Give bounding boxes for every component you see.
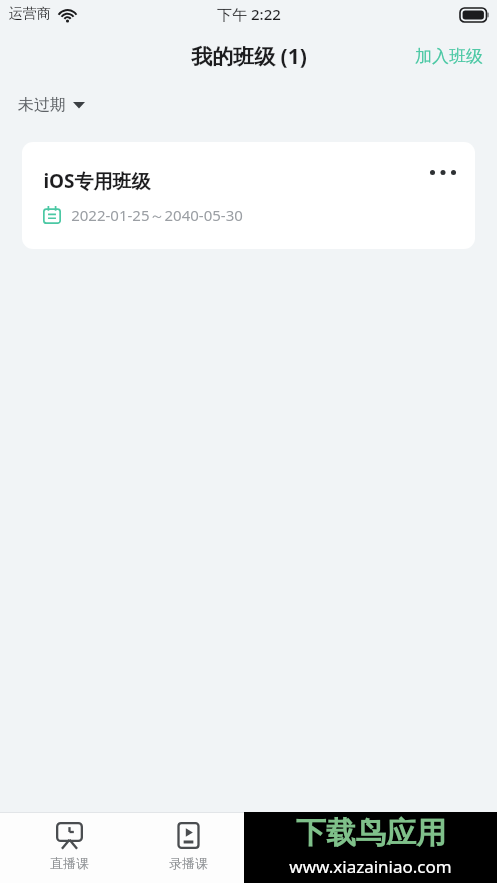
button[interactable]: 直播课	[20, 813, 119, 883]
button[interactable]: 更多	[419, 154, 467, 190]
staticText: 加入班级	[415, 46, 483, 67]
button[interactable]: iOS专用班级	[22, 142, 475, 249]
staticText: 我的班级 (1)	[191, 42, 307, 71]
staticText: iOS专用班级	[43, 168, 151, 194]
staticText: 商城	[296, 855, 322, 871]
staticText: 我的	[415, 855, 441, 871]
staticText: 录播课	[169, 855, 208, 871]
staticText: www.xiazainiao.com	[289, 855, 452, 878]
staticText: 运营商	[9, 5, 51, 23]
button[interactable]: 加入班级	[401, 40, 497, 73]
staticText: 直播课	[50, 855, 89, 871]
button[interactable]: 录播课	[139, 813, 238, 883]
staticText: 下午 2:22	[217, 4, 281, 24]
staticText: 未过期	[18, 95, 66, 115]
button[interactable]: 未过期	[12, 91, 91, 119]
staticText: 2022-01-25～2040-05-30	[71, 205, 243, 225]
button[interactable]: 商城	[259, 813, 358, 883]
staticText: 下载鸟应用	[296, 814, 446, 852]
button[interactable]: 我的	[378, 813, 477, 883]
